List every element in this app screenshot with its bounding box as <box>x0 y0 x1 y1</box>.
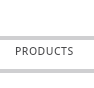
button[interactable]: PRODUCTS <box>0 40 94 69</box>
staticText: PRODUCTS <box>15 44 74 58</box>
